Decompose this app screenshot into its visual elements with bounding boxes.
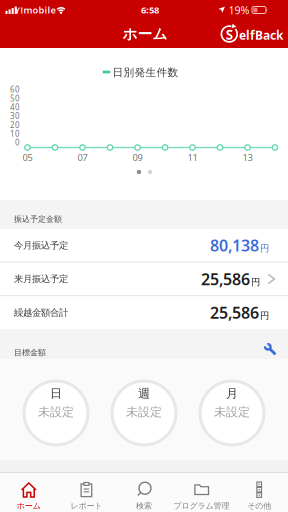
button[interactable]: 日 (22, 379, 89, 446)
staticText: 円 (260, 310, 269, 321)
staticText: その他 (247, 501, 271, 511)
staticText: 20 (10, 119, 20, 130)
staticText: 目標金額 (14, 348, 46, 357)
staticText: Y!mobile (14, 4, 55, 16)
staticText: 円 (251, 276, 260, 288)
staticText: 振込予定金額 (14, 214, 62, 224)
button[interactable]: 週 (110, 379, 177, 446)
staticText: レポート (70, 501, 102, 511)
button[interactable]: プログラム管理 (173, 473, 230, 512)
button[interactable]: 今月振込予定 (0, 229, 288, 262)
staticText: 繰越金額合計 (14, 307, 68, 318)
staticText: 25,586 (201, 268, 250, 290)
staticText: 検索 (136, 501, 152, 511)
staticText: 未設定 (38, 405, 74, 419)
button[interactable]: 検索 (115, 473, 173, 512)
button[interactable]: ホーム (0, 473, 58, 512)
staticText: 11 (187, 151, 197, 164)
staticText: 80,138 (210, 235, 259, 256)
button[interactable]: 目標金額を設定 (263, 342, 279, 358)
staticText: 今月振込予定 (14, 240, 68, 251)
staticText: 25,586 (210, 302, 259, 323)
staticText: 07 (77, 151, 87, 164)
staticText: 19% (228, 3, 249, 17)
staticText: 来月振込予定 (14, 273, 68, 285)
staticText: 月 (226, 386, 238, 401)
staticText: 05 (22, 151, 32, 164)
staticText: 未設定 (126, 405, 162, 419)
staticText: 09 (132, 151, 142, 164)
staticText: ホーム (17, 501, 41, 511)
staticText: 日 (50, 386, 62, 401)
staticText: 40 (10, 102, 20, 112)
button[interactable]: 繰越金額合計 (0, 296, 288, 329)
staticText: 0 (15, 137, 20, 148)
staticText: 日別発生件数 (112, 66, 178, 79)
staticText: プログラム管理 (174, 501, 230, 511)
staticText: ホーム (122, 25, 167, 43)
staticText: 未設定 (214, 405, 250, 419)
staticText: 50 (10, 93, 20, 104)
staticText: 13 (242, 151, 252, 164)
staticText: 円 (260, 243, 269, 254)
staticText: 週 (138, 386, 150, 401)
button[interactable]: 月 (198, 379, 265, 446)
staticText: 30 (10, 111, 20, 121)
staticText: 60 (10, 84, 20, 95)
staticText: elfBack (239, 27, 283, 43)
button[interactable]: 来月振込予定 (0, 263, 288, 295)
button[interactable]: レポート (58, 473, 115, 512)
staticText: 6:58 (141, 4, 159, 16)
button[interactable]: その他 (230, 473, 288, 512)
button[interactable]: SelfBack (221, 22, 287, 46)
staticText: S (226, 26, 233, 43)
staticText: 10 (10, 128, 20, 139)
